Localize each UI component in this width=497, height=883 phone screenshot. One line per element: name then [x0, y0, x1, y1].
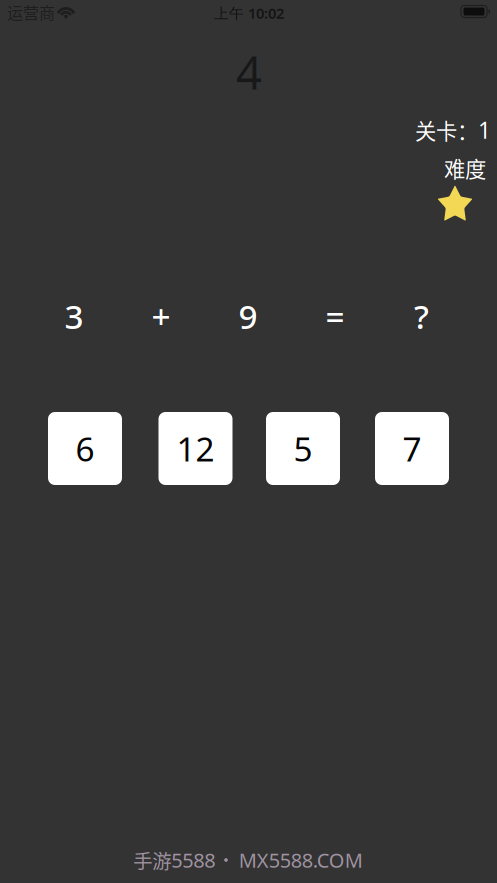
staticText: 4 — [236, 42, 262, 102]
staticText: 关卡： — [415, 115, 478, 145]
staticText: 运营商 — [7, 0, 55, 24]
staticText: 上午 10:02 — [214, 3, 284, 23]
staticText: + — [151, 294, 170, 338]
button[interactable]: 7 — [375, 412, 449, 485]
button[interactable]: 5 — [266, 412, 340, 485]
button[interactable]: 12 — [158, 412, 232, 485]
staticText: = — [325, 294, 344, 338]
button[interactable]: 6 — [48, 412, 122, 485]
staticText: 6 — [75, 426, 94, 471]
staticText: 12 — [176, 426, 214, 471]
staticText: ? — [414, 294, 429, 338]
staticText: 5588 — [171, 847, 215, 873]
staticText: 5 — [293, 426, 312, 471]
staticText: 3 — [64, 294, 83, 338]
staticText: 难度 — [444, 153, 486, 183]
staticText: MX5588.COM — [239, 847, 363, 873]
staticText: 7 — [402, 426, 421, 471]
staticText: 手游 — [133, 846, 171, 874]
staticText: 9 — [238, 294, 257, 338]
staticText: 1 — [478, 115, 491, 145]
